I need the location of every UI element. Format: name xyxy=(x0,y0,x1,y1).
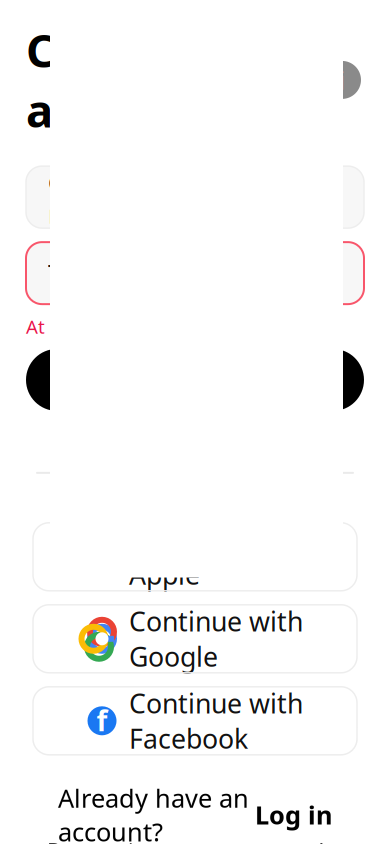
button[interactable]: Continue with Google xyxy=(33,605,357,673)
button[interactable] xyxy=(33,523,357,591)
button[interactable]: Test1234 xyxy=(26,242,364,304)
staticText: Test1234 xyxy=(48,256,151,290)
button[interactable]: Information xyxy=(320,58,364,102)
staticText: i xyxy=(338,63,345,97)
staticText: Continue with Facebook xyxy=(129,685,303,756)
staticText: Continue with Google xyxy=(129,603,303,674)
staticText: Continue with Apple xyxy=(129,521,303,592)
button[interactable]: qawork202@gmail.com xyxy=(26,166,364,228)
button[interactable]: Create account xyxy=(26,349,364,411)
staticText: qawork202@gmail.com xyxy=(48,163,312,231)
staticText: Create account xyxy=(26,20,205,140)
button[interactable]: f xyxy=(33,687,357,755)
staticText: At least 8 characters including lowercas… xyxy=(26,314,348,339)
staticText: f xyxy=(96,702,107,739)
